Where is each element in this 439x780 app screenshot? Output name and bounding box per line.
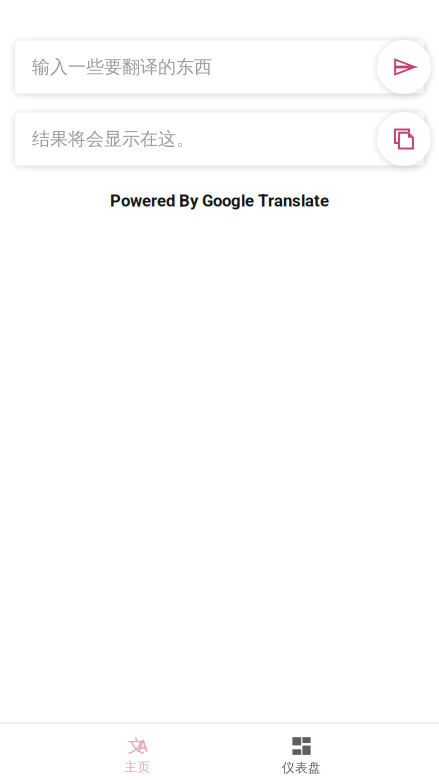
staticText: A	[137, 737, 148, 756]
staticText: 文	[127, 732, 144, 757]
staticText: 结果将会显示在这。	[32, 128, 194, 150]
staticText: 主页	[124, 759, 150, 775]
staticText: 仪表盘	[282, 760, 321, 776]
button[interactable]: 文	[95, 724, 179, 780]
button[interactable]: 输入一些要翻译的东西	[15, 40, 424, 93]
button[interactable]: Translate	[377, 40, 431, 94]
button[interactable]: 仪表盘	[259, 723, 343, 780]
staticText: Powered By Google Translate	[110, 191, 329, 210]
button[interactable]: 结果将会显示在这。	[15, 112, 424, 165]
button[interactable]: Copy	[377, 112, 431, 166]
staticText: 输入一些要翻译的东西	[32, 56, 212, 78]
